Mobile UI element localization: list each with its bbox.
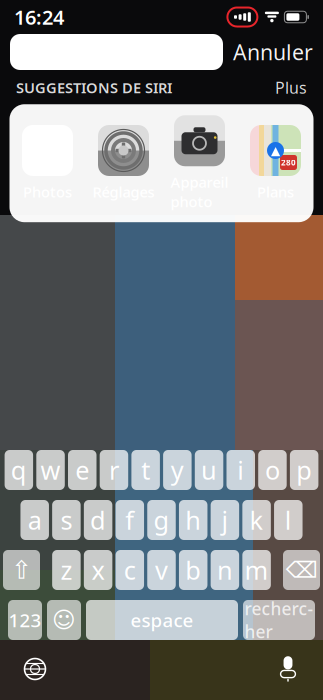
button[interactable]: Changer de clavier [18, 654, 52, 684]
staticText: t [141, 453, 150, 487]
button[interactable]: Plus [275, 77, 307, 98]
staticText: m [245, 553, 269, 587]
staticText: e [75, 453, 89, 487]
button[interactable]: 123 [8, 600, 42, 640]
button[interactable]: espace [86, 600, 238, 640]
staticText: Annuler [233, 38, 313, 66]
staticText: u [201, 453, 217, 487]
staticText: ⇧ [11, 556, 32, 584]
button[interactable]: o [258, 450, 287, 490]
staticText: b [185, 553, 201, 587]
button[interactable]: Réglages [85, 125, 161, 201]
staticText: x [92, 553, 105, 587]
staticText: w [40, 453, 60, 487]
button[interactable]: Photos [9, 125, 85, 201]
button[interactable]: m [242, 550, 271, 590]
button[interactable]: n [211, 550, 239, 590]
staticText: q [11, 453, 27, 487]
button[interactable]: h [179, 500, 207, 540]
button[interactable]: g [147, 500, 176, 540]
staticText: ☺ [52, 607, 76, 633]
staticText: n [217, 553, 233, 587]
button[interactable]: Dictée [271, 654, 305, 684]
staticText: s [60, 503, 72, 537]
button[interactable]: l [274, 500, 302, 540]
staticText: Réglages [92, 182, 154, 201]
button[interactable]: y [163, 450, 192, 490]
staticText: Plans [257, 182, 294, 201]
staticText: r [109, 453, 119, 487]
button[interactable]: z [52, 550, 81, 590]
button[interactable]: d [84, 500, 112, 540]
button[interactable]: t [131, 450, 160, 490]
button[interactable]: k [242, 500, 271, 540]
button[interactable]: x [84, 550, 112, 590]
staticText: espace [130, 608, 193, 632]
staticText: SUGGESTIONS DE SIRI [16, 78, 172, 97]
button[interactable]: a [20, 500, 49, 540]
staticText: i [237, 453, 244, 487]
button[interactable]: e [68, 450, 96, 490]
button[interactable]: c [116, 550, 144, 590]
button[interactable]: p [290, 450, 318, 490]
button[interactable]: s [52, 500, 81, 540]
button[interactable]: v [147, 550, 176, 590]
staticText: c [124, 553, 136, 587]
staticText: l [285, 503, 292, 537]
staticText: rechercher [244, 597, 313, 643]
staticText: k [250, 503, 264, 537]
staticText: ⌫ [285, 557, 317, 583]
button[interactable]: Annuler [233, 38, 313, 66]
button[interactable]: f [115, 500, 144, 540]
button[interactable]: u [195, 450, 223, 490]
staticText: p [296, 453, 312, 487]
button[interactable]: i [226, 450, 255, 490]
staticText: 280 [281, 157, 296, 168]
button[interactable]: j [211, 500, 239, 540]
staticText: z [60, 553, 72, 587]
button[interactable]: Appareil photo [161, 115, 237, 211]
staticText: a [28, 503, 42, 537]
staticText: h [185, 503, 201, 537]
button[interactable]: w [36, 450, 65, 490]
staticText: Photos [23, 182, 72, 201]
button[interactable]: 280 [237, 125, 313, 201]
staticText: Plus [275, 77, 307, 98]
button[interactable]: Majuscule [3, 550, 40, 590]
staticText: 123 [8, 608, 41, 632]
button[interactable]: Emoji [47, 600, 81, 640]
button[interactable]: rechercher [243, 600, 315, 640]
button[interactable]: Rechercher [10, 34, 223, 70]
staticText: y [171, 453, 184, 487]
button[interactable]: r [100, 450, 128, 490]
button[interactable]: q [5, 450, 33, 490]
staticText: Appareil photo [170, 172, 228, 211]
button[interactable]: Supprimer [283, 550, 320, 590]
staticText: j [221, 503, 228, 537]
staticText: ▲ [271, 144, 280, 157]
staticText: d [90, 503, 106, 537]
button[interactable]: b [179, 550, 207, 590]
staticText: v [155, 553, 168, 587]
staticText: f [125, 503, 134, 537]
staticText: o [265, 453, 280, 487]
staticText: g [153, 503, 169, 537]
staticText: 16:24 [14, 4, 64, 30]
